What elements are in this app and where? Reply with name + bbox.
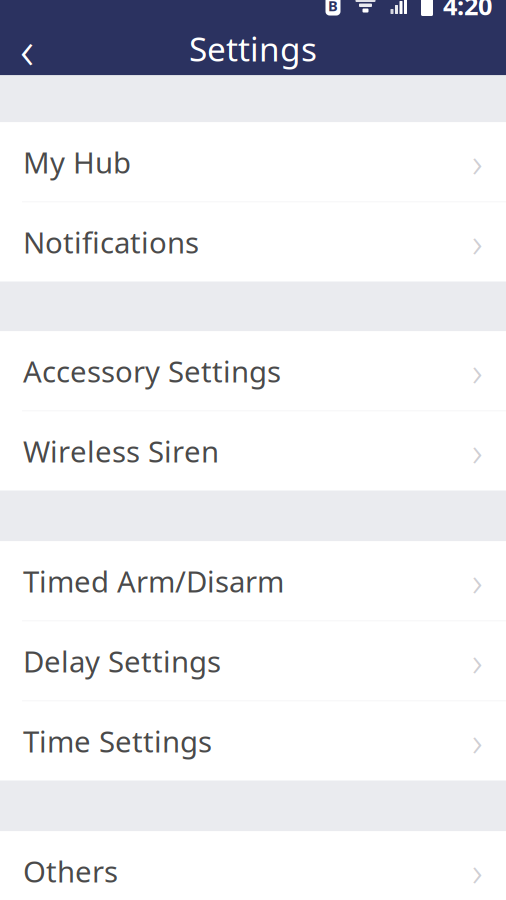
staticText: Others — [23, 851, 118, 890]
staticText: › — [472, 714, 483, 767]
button[interactable]: Accessory Settings — [0, 331, 506, 410]
staticText: B — [328, 0, 338, 15]
staticText: › — [472, 634, 483, 687]
staticText: Time Settings — [23, 721, 212, 760]
button[interactable]: Wireless Siren — [0, 411, 506, 490]
button[interactable]: Timed Arm/Disarm — [0, 541, 506, 620]
staticText: 4:20 — [443, 0, 492, 22]
staticText: Settings — [189, 26, 317, 71]
button[interactable]: Back — [0, 21, 54, 75]
staticText: › — [472, 424, 483, 477]
staticText: › — [472, 135, 483, 188]
staticText: Wireless Siren — [23, 431, 219, 470]
staticText: Notifications — [23, 222, 199, 261]
button[interactable]: Time Settings — [0, 701, 506, 780]
staticText: Timed Arm/Disarm — [23, 561, 284, 600]
button[interactable]: Notifications — [0, 202, 506, 281]
button[interactable]: Delay Settings — [0, 621, 506, 700]
button[interactable]: Others — [0, 831, 506, 900]
button[interactable]: My Hub — [0, 122, 506, 201]
staticText: › — [472, 554, 483, 607]
staticText: › — [472, 215, 483, 268]
staticText: › — [472, 344, 483, 397]
staticText: › — [472, 844, 483, 897]
staticText: Delay Settings — [23, 641, 221, 680]
staticText: ‹ — [20, 13, 34, 84]
staticText: Accessory Settings — [23, 351, 281, 390]
staticText: My Hub — [23, 142, 131, 181]
